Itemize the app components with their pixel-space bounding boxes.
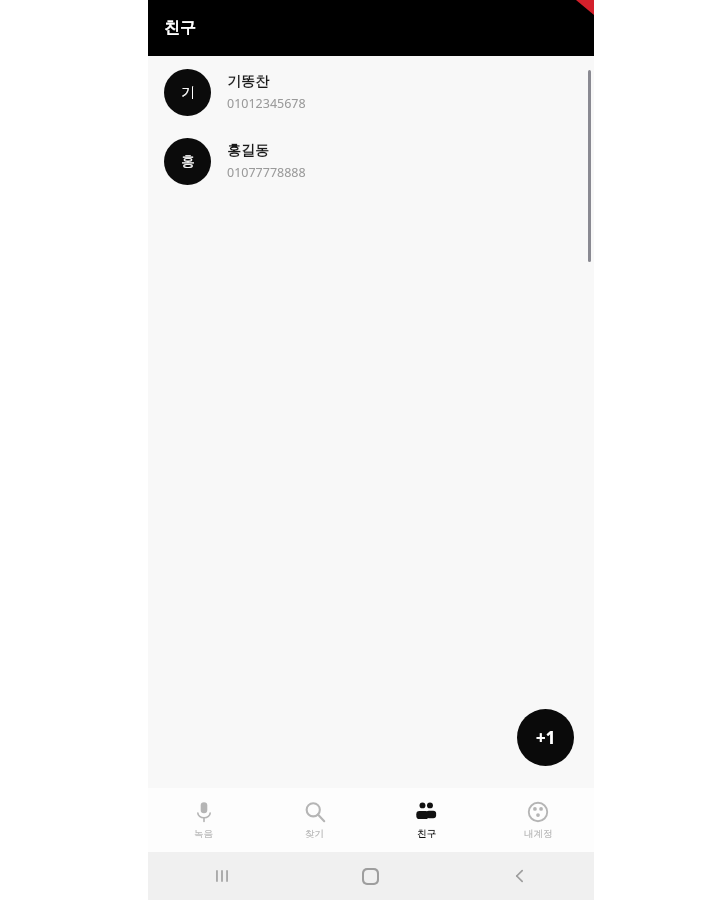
staticText: 내계정 <box>524 828 553 840</box>
button[interactable]: 기 <box>148 69 594 116</box>
button[interactable]: 친구 <box>370 788 482 852</box>
button[interactable]: 홍 <box>148 138 594 185</box>
button[interactable]: 찾기 <box>259 788 370 852</box>
staticText: 찾기 <box>305 828 324 840</box>
button[interactable]: 녹음 <box>148 788 259 852</box>
staticText: 01012345678 <box>227 95 306 112</box>
staticText: 01077778888 <box>227 164 306 181</box>
staticText: +1 <box>536 726 556 749</box>
button[interactable]: Recents <box>148 852 296 900</box>
staticText: 녹음 <box>194 828 213 840</box>
staticText: 친구 <box>164 18 196 38</box>
staticText: 홍 <box>181 153 195 171</box>
staticText: 기똥찬 <box>227 73 269 91</box>
staticText: 친구 <box>417 828 436 840</box>
button[interactable]: 내계정 <box>482 788 594 852</box>
staticText: 홍길동 <box>227 142 269 160</box>
button[interactable]: Back <box>445 852 594 900</box>
staticText: 기 <box>181 84 195 102</box>
button[interactable]: Home <box>296 852 445 900</box>
button[interactable]: 친구 추가 <box>517 709 574 766</box>
